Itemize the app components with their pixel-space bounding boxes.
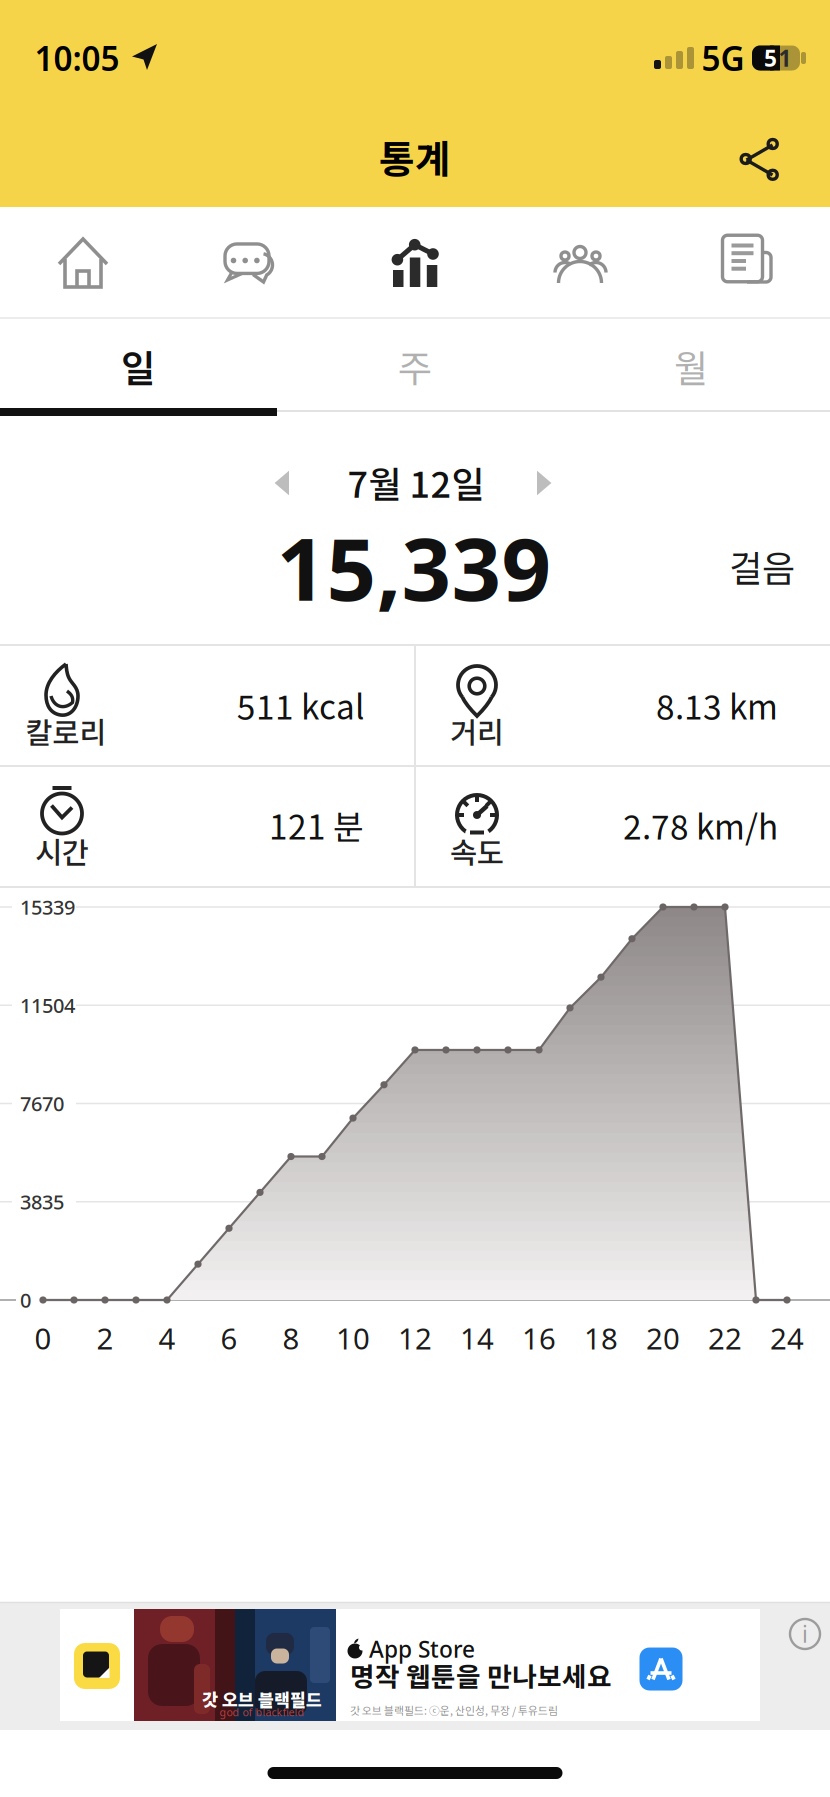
staticText: 6 bbox=[220, 1318, 237, 1357]
staticText: 121 분 bbox=[269, 801, 364, 849]
staticText: 갓 오브 블랙필드 bbox=[202, 1686, 322, 1712]
staticText: 4 bbox=[158, 1318, 175, 1357]
staticText: 8.13 km bbox=[656, 681, 778, 729]
button[interactable]: 갓 오브 블랙필드 bbox=[60, 1609, 760, 1721]
staticText: 2 bbox=[96, 1318, 113, 1357]
staticText: 2.78 km/h bbox=[623, 801, 778, 849]
staticText: 걸음 bbox=[729, 540, 795, 592]
button[interactable]: Next day bbox=[507, 452, 569, 514]
button[interactable]: News bbox=[664, 207, 830, 318]
staticText: 10 bbox=[336, 1318, 370, 1357]
staticText: 24 bbox=[770, 1318, 804, 1357]
staticText: 일 bbox=[121, 339, 155, 393]
staticText: 주 bbox=[398, 339, 432, 393]
staticText: 8 bbox=[282, 1318, 299, 1357]
staticText: 20 bbox=[646, 1318, 680, 1357]
staticText: 갓 오브 블랙필드: ⓒ운, 산인성, 무장 / 투유드림 bbox=[350, 1702, 558, 1718]
button[interactable]: Statistics bbox=[332, 207, 498, 318]
staticText: 15339 bbox=[20, 894, 75, 920]
staticText: 22 bbox=[708, 1318, 742, 1357]
staticText: 시간 bbox=[35, 830, 89, 872]
staticText: 511 kcal bbox=[237, 681, 364, 729]
staticText: 0 bbox=[34, 1318, 51, 1357]
staticText: 5 bbox=[764, 43, 777, 73]
button[interactable]: 주 bbox=[325, 331, 505, 401]
staticText: 칼로리 bbox=[25, 710, 106, 752]
button[interactable]: Home bbox=[0, 207, 166, 318]
button[interactable]: Friends bbox=[498, 207, 664, 318]
staticText: 15,339 bbox=[276, 509, 551, 625]
button[interactable]: Chat bbox=[166, 207, 332, 318]
staticText: 5G bbox=[701, 36, 744, 80]
staticText: god of blackfield bbox=[219, 1705, 304, 1719]
button[interactable]: Share bbox=[724, 124, 794, 194]
staticText: 명작 웹툰을 만나보세요 bbox=[350, 1656, 612, 1694]
staticText: 속도 bbox=[450, 830, 504, 872]
staticText: App Store bbox=[369, 1634, 475, 1664]
staticText: 11504 bbox=[20, 992, 75, 1019]
staticText: 0 bbox=[20, 1287, 31, 1313]
staticText: 7월 12일 bbox=[347, 456, 484, 508]
staticText: 18 bbox=[584, 1318, 618, 1357]
staticText: 거리 bbox=[450, 710, 504, 752]
button[interactable]: Ad info bbox=[789, 1618, 821, 1650]
staticText: 월 bbox=[674, 339, 708, 393]
staticText: 12 bbox=[398, 1318, 432, 1357]
staticText: 16 bbox=[522, 1318, 556, 1357]
button[interactable]: 월 bbox=[601, 331, 781, 401]
staticText: 통계 bbox=[379, 129, 451, 185]
staticText: 14 bbox=[460, 1318, 494, 1357]
staticText: 3835 bbox=[20, 1188, 64, 1215]
staticText: 7670 bbox=[20, 1090, 64, 1117]
button[interactable]: Previous day bbox=[257, 452, 319, 514]
button[interactable]: 일 bbox=[48, 331, 228, 401]
staticText: 10:05 bbox=[34, 36, 119, 80]
staticText: i bbox=[802, 1619, 808, 1649]
staticText: 1 bbox=[778, 43, 791, 73]
